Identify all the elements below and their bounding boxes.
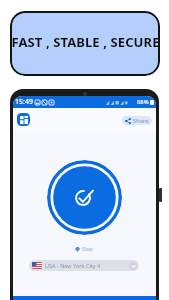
button[interactable]: App logo <box>17 113 30 126</box>
staticText: Share <box>133 117 149 125</box>
button[interactable]: Stop <box>75 246 93 253</box>
staticText: Stop <box>82 246 93 253</box>
staticText: FAST , STABLE , SECURE <box>11 33 160 51</box>
button[interactable]: Share <box>122 116 152 125</box>
button[interactable]: USA - New York City 4 <box>29 260 139 271</box>
staticText: USA - New York City 4 <box>45 262 101 269</box>
staticText: 68% <box>137 98 149 106</box>
staticText: 15:49 <box>15 97 33 107</box>
button[interactable]: FAST , STABLE , SECURE <box>10 11 160 76</box>
button[interactable]: Connect <box>47 160 122 235</box>
